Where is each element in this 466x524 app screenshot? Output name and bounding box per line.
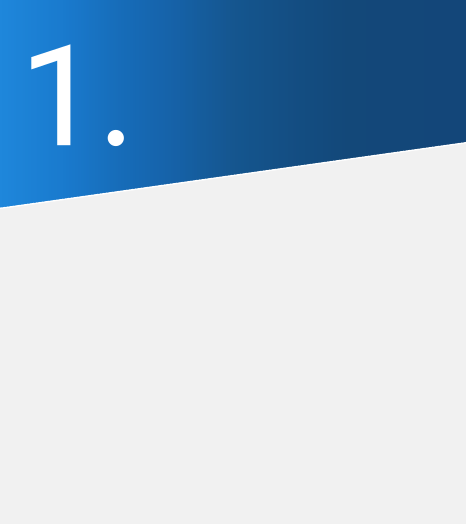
staticText: 1. xyxy=(17,0,137,186)
